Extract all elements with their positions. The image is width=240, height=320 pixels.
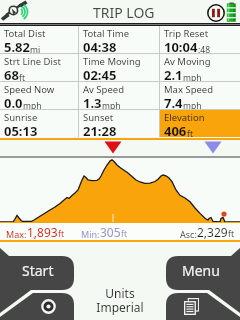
staticText: Time Moving — [83, 55, 141, 68]
staticText: 04:38 — [83, 38, 117, 56]
staticText: 2,329 — [197, 224, 228, 240]
staticText: Start — [22, 261, 54, 280]
button[interactable]: Sunrise — [0, 110, 78, 137]
staticText: 21:28 — [83, 122, 117, 140]
staticText: Trip Reset — [164, 27, 209, 40]
staticText: Menu — [182, 261, 220, 280]
button[interactable]: Speed Now — [0, 82, 78, 109]
button[interactable]: Trip Reset — [160, 26, 240, 53]
staticText: Sunset — [83, 111, 114, 124]
staticText: Speed Now — [4, 83, 55, 96]
staticText: Av Speed — [83, 83, 124, 96]
button[interactable]: Menu — [166, 248, 240, 320]
button[interactable]: Sunset — [79, 110, 159, 137]
button[interactable]: Total Time — [79, 26, 159, 53]
button[interactable]: Av Moving — [160, 54, 240, 81]
staticText: mph — [23, 100, 42, 112]
staticText: mph — [183, 72, 202, 84]
staticText: Total Time — [83, 27, 130, 40]
staticText: 2.1 — [164, 66, 183, 84]
staticText: Av Moving — [164, 55, 211, 68]
button[interactable]: Strt Line Dist — [0, 54, 78, 81]
staticText: Units Imperial — [0, 285, 240, 316]
staticText: Sunrise — [4, 111, 38, 124]
button[interactable]: Total Dist — [0, 26, 78, 53]
staticText: Total Dist — [4, 27, 46, 40]
staticText: ft — [19, 72, 25, 84]
staticText: Elevation — [164, 111, 205, 124]
staticText: mi — [30, 44, 41, 56]
staticText: TRIP LOG — [93, 3, 155, 22]
staticText: :48 — [198, 44, 211, 56]
button[interactable]: Elevation — [160, 110, 240, 137]
staticText: 1,893 — [27, 224, 58, 240]
staticText: Asc: — [180, 228, 197, 240]
button[interactable]: Mark waypoint — [0, 293, 74, 320]
staticText: 305 — [100, 224, 121, 240]
staticText: 406 — [164, 122, 187, 140]
staticText: 0.0 — [4, 94, 23, 112]
staticText: ft — [121, 228, 127, 240]
button[interactable]: Max Speed — [160, 82, 240, 109]
staticText: 5.82 — [4, 38, 30, 56]
staticText: mph — [102, 100, 121, 112]
staticText: mph — [183, 100, 202, 112]
staticText: Strt Line Dist — [4, 55, 61, 68]
staticText: 10:04 — [164, 38, 198, 56]
button[interactable]: Pause — [207, 4, 225, 22]
staticText: 68 — [4, 66, 19, 84]
button[interactable]: Time Moving — [79, 54, 159, 81]
staticText: 7.4 — [164, 94, 183, 112]
button[interactable]: Av Speed — [79, 82, 159, 109]
staticText: ft — [58, 228, 64, 240]
staticText: Max: — [6, 228, 27, 240]
staticText: 02:45 — [83, 66, 117, 84]
staticText: ft — [187, 128, 193, 140]
staticText: Min: — [81, 228, 100, 240]
button[interactable]: Page list — [166, 293, 240, 320]
staticText: ft — [228, 228, 234, 240]
staticText: 1.3 — [83, 94, 102, 112]
staticText: Max Speed — [164, 83, 214, 96]
button[interactable]: Start — [0, 248, 74, 320]
staticText: 05:13 — [4, 122, 38, 140]
